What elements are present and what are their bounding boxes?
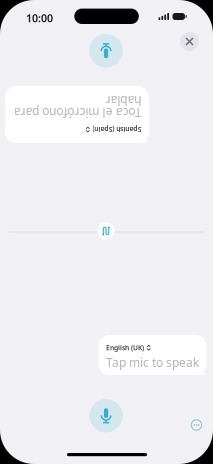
button[interactable]: Listen in Spanish — [89, 34, 123, 67]
staticText: Tap mic to speak — [106, 354, 199, 370]
button[interactable]: More options — [185, 414, 207, 436]
button[interactable]: Close — [180, 32, 199, 51]
button[interactable]: Tap mic to speak — [89, 399, 123, 432]
staticText: 10:00 — [26, 11, 53, 25]
staticText: English (UK) — [106, 343, 144, 352]
button[interactable]: Swap languages — [97, 222, 115, 240]
staticText: Toca el micrófono para hablar — [12, 108, 140, 136]
